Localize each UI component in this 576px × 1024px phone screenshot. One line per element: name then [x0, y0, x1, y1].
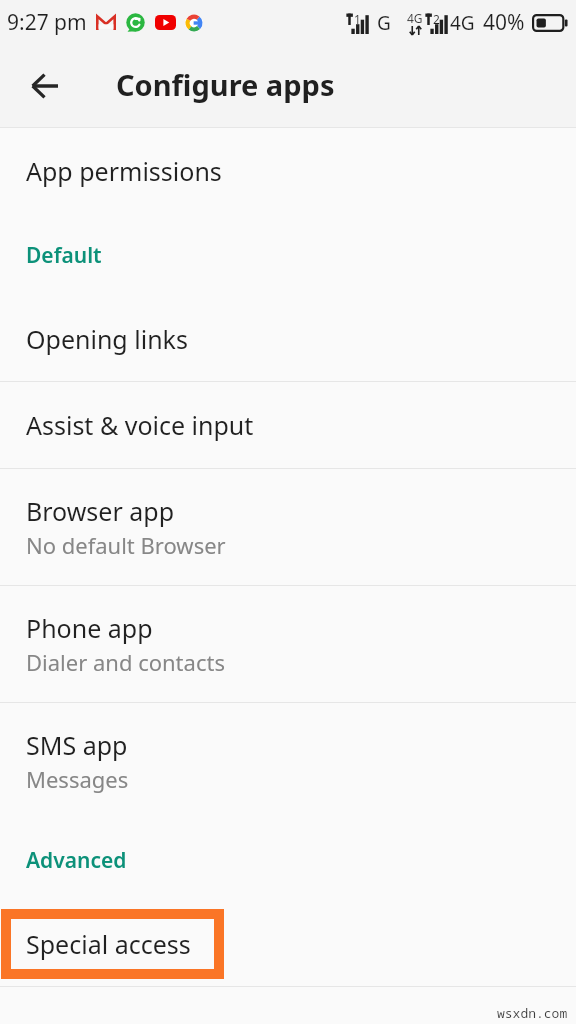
staticText: Configure apps — [116, 65, 335, 104]
staticText: 40% — [483, 8, 525, 37]
button[interactable]: Opening links — [0, 296, 576, 381]
button[interactable]: SMS app — [0, 703, 576, 819]
staticText: wsxdn.com — [497, 1004, 568, 1022]
staticText: Dialer and contacts — [26, 647, 225, 677]
staticText: Advanced — [26, 846, 127, 875]
button[interactable]: Browser app — [0, 469, 576, 585]
staticText: No default Browser — [26, 530, 226, 560]
staticText: G — [377, 10, 391, 36]
button[interactable]: Special access — [0, 901, 576, 986]
staticText: Browser app — [26, 494, 175, 528]
staticText: Default — [26, 241, 102, 270]
staticText: 4G — [407, 10, 423, 26]
button[interactable]: App permissions — [0, 128, 576, 214]
staticText: 2 — [433, 11, 440, 27]
staticText: 9:27 pm — [7, 8, 87, 37]
staticText: 1 — [354, 11, 361, 27]
staticText: Opening links — [26, 322, 188, 356]
staticText: Special access — [26, 927, 191, 961]
staticText: Assist & voice input — [26, 408, 254, 442]
staticText: SMS app — [26, 728, 128, 762]
staticText: Phone app — [26, 611, 153, 645]
button[interactable]: Back — [19, 61, 69, 111]
button[interactable]: Assist & voice input — [0, 382, 576, 468]
button[interactable]: Phone app — [0, 586, 576, 702]
staticText: Messages — [26, 764, 129, 794]
staticText: 4G — [450, 10, 475, 36]
staticText: App permissions — [26, 154, 222, 188]
